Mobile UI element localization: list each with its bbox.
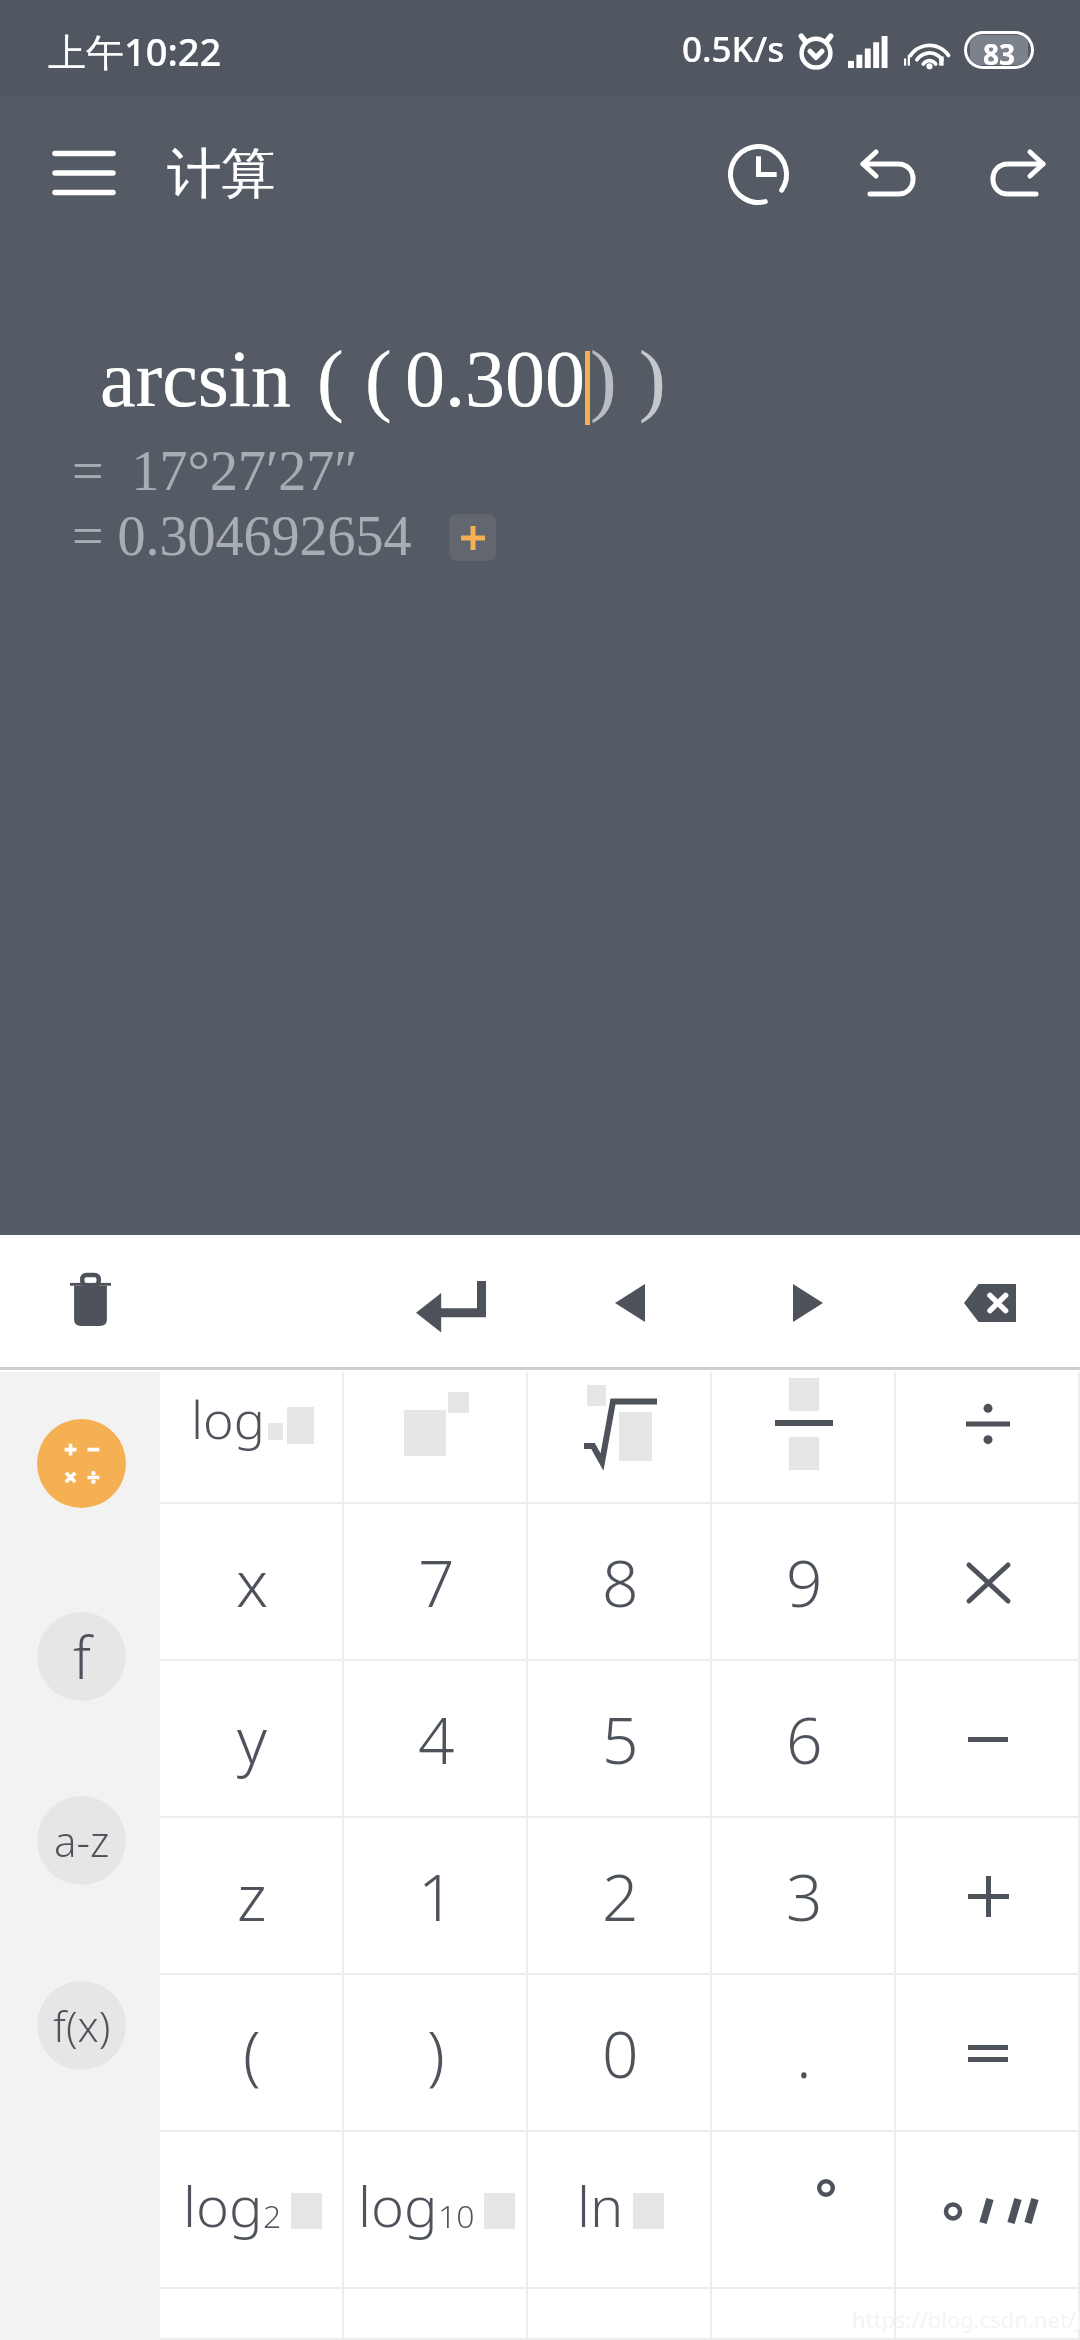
button[interactable]: Root [528, 1372, 712, 1504]
button[interactable]: Move right [733, 1235, 883, 1370]
staticText: = 17°27′27″ [72, 440, 358, 502]
staticText: ( [243, 2010, 261, 2097]
button[interactable]: Backspace [900, 1235, 1080, 1370]
staticText: x [236, 1539, 269, 1626]
button[interactable]: Menu [40, 130, 128, 216]
button[interactable]: x [160, 1504, 344, 1661]
button[interactable]: ) [344, 1975, 528, 2132]
button[interactable]: Store result [449, 514, 496, 561]
button[interactable]: Add [896, 1818, 1080, 1975]
staticText: . [796, 2010, 812, 2097]
staticText: https://blog.csdn.net/JACK__Q [852, 2304, 1080, 2334]
staticText: log [183, 2167, 263, 2243]
button[interactable]: Log base 2 [160, 2132, 344, 2289]
button[interactable]: Undo [830, 116, 946, 232]
staticText: 9 [786, 1539, 823, 1626]
staticText: 6 [786, 1696, 823, 1783]
button[interactable]: Keys [37, 1981, 126, 2070]
button[interactable] [896, 2289, 1080, 2340]
button[interactable]: Divide [896, 1372, 1080, 1504]
button[interactable]: 7 [344, 1504, 528, 1661]
staticText: ) [639, 335, 666, 424]
staticText: = 0.304692654 [72, 505, 412, 567]
button[interactable] [712, 2289, 896, 2340]
staticText: log [358, 2167, 438, 2243]
staticText: ( [317, 335, 344, 424]
button[interactable]: Redo [960, 116, 1076, 232]
button[interactable]: Keys [37, 1796, 126, 1885]
staticText: ln [577, 2167, 624, 2243]
button[interactable]: Logarithm [160, 1372, 344, 1504]
button[interactable]: 3 [712, 1818, 896, 1975]
staticText: arcsin [100, 335, 292, 424]
staticText: 1 [418, 1853, 455, 1940]
button[interactable]: Multiply [896, 1504, 1080, 1661]
button[interactable]: Equals [896, 1975, 1080, 2132]
button[interactable]: . [712, 1975, 896, 2132]
staticText: 0.5K/s [682, 25, 785, 73]
staticText: 8 [602, 1539, 639, 1626]
button[interactable]: Clear [0, 1235, 198, 1370]
button[interactable]: Degrees minutes seconds [896, 2132, 1080, 2289]
button[interactable]: Arithmetic [37, 1419, 126, 1508]
button[interactable]: 4 [344, 1661, 528, 1818]
button[interactable]: z [160, 1818, 344, 1975]
staticText: log [191, 1383, 265, 1454]
button[interactable]: Enter [361, 1235, 541, 1370]
staticText: 2 [602, 1853, 639, 1940]
button[interactable]: y [160, 1661, 344, 1818]
staticText: 7 [418, 1539, 455, 1626]
button[interactable]: Keys [37, 1612, 126, 1701]
staticText: 5 [602, 1696, 639, 1783]
button[interactable]: Move left [555, 1235, 705, 1370]
button[interactable]: Subtract [896, 1661, 1080, 1818]
staticText: ( [365, 335, 392, 424]
button[interactable]: 9 [712, 1504, 896, 1661]
staticText: z [237, 1853, 267, 1940]
staticText: 83 [983, 35, 1016, 65]
staticText: f [73, 1617, 91, 1696]
staticText: 0 [602, 2010, 639, 2097]
button[interactable] [344, 2289, 528, 2340]
staticText: 计算 [167, 140, 275, 208]
button[interactable]: History [700, 116, 816, 232]
staticText: f(x) [53, 1997, 111, 2054]
button[interactable]: Degree [712, 2132, 896, 2289]
staticText: 0.300 [405, 335, 585, 424]
staticText: 4 [418, 1696, 455, 1783]
staticText: 3 [786, 1853, 823, 1940]
staticText: y [237, 1696, 268, 1783]
button[interactable]: 1 [344, 1818, 528, 1975]
staticText: ) [590, 335, 617, 424]
button[interactable] [160, 2289, 344, 2340]
button[interactable]: 6 [712, 1661, 896, 1818]
staticText: 上午10:22 [48, 25, 222, 77]
staticText: 2 [263, 2194, 282, 2238]
button[interactable]: Fraction [712, 1372, 896, 1504]
button[interactable]: ( [160, 1975, 344, 2132]
button[interactable]: 0 [528, 1975, 712, 2132]
staticText: a-z [54, 1812, 110, 1869]
staticText: 10 [438, 2194, 475, 2238]
button[interactable]: Log base 10 [344, 2132, 528, 2289]
staticText: ) [427, 2010, 445, 2097]
button[interactable] [528, 2289, 712, 2340]
button[interactable]: 5 [528, 1661, 712, 1818]
button[interactable]: 8 [528, 1504, 712, 1661]
button[interactable]: 2 [528, 1818, 712, 1975]
button[interactable]: Natural log [528, 2132, 712, 2289]
button[interactable]: Power [344, 1372, 528, 1504]
